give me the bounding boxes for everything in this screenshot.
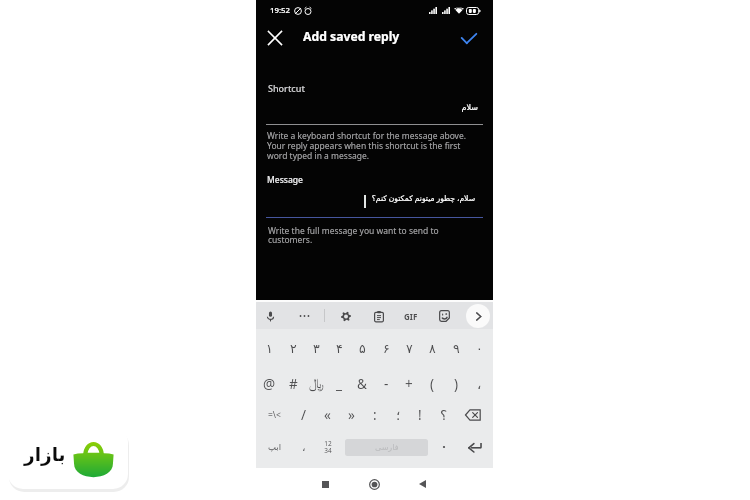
staticText: ؟ (440, 407, 448, 423)
button[interactable]: ! (409, 403, 431, 427)
button[interactable]: ﷼ (305, 372, 327, 396)
staticText: ۹ (453, 341, 460, 356)
staticText: ۸ (429, 341, 436, 356)
staticText: ( (430, 375, 435, 393)
button[interactable]: _ (328, 372, 350, 396)
staticText: سلام (256, 103, 478, 112)
button[interactable] (433, 434, 455, 460)
staticText: ، (477, 376, 482, 392)
button[interactable]: & (351, 372, 373, 396)
staticText: » (348, 406, 355, 424)
button[interactable]: ۱ (258, 336, 280, 360)
button[interactable]: ابپ (263, 434, 287, 460)
button[interactable]: ۸ (421, 336, 443, 360)
staticText: سلام، چطور میتونم کمکتون کنم؟ (256, 193, 475, 203)
button[interactable]: ) (445, 372, 467, 396)
button[interactable]: Voice input (259, 305, 281, 327)
button[interactable]: ۴ (328, 336, 350, 360)
staticText: ؛ (396, 407, 401, 423)
staticText: ۵ (359, 341, 366, 356)
staticText: Message (267, 174, 303, 186)
button[interactable]: » (340, 403, 362, 427)
staticText: ۴ (336, 341, 343, 356)
staticText: / (301, 406, 307, 424)
button[interactable]: / (293, 403, 315, 427)
staticText: - (384, 375, 389, 393)
staticText: Add saved reply (303, 28, 400, 45)
button[interactable]: Stickers (433, 305, 455, 327)
button[interactable]: ۶ (375, 336, 397, 360)
button[interactable]: - (375, 372, 397, 396)
button[interactable]: Backspace (460, 403, 486, 427)
staticText: 19:52 (270, 5, 290, 16)
button[interactable]: Home (362, 472, 386, 496)
button[interactable]: ؟ (433, 403, 455, 427)
button[interactable]: More options (293, 305, 315, 327)
staticText: ابپ (268, 442, 282, 452)
staticText: & (357, 375, 367, 393)
button[interactable]: + (398, 372, 420, 396)
button[interactable]: Save (454, 23, 484, 53)
button[interactable]: « (316, 403, 338, 427)
button[interactable]: ۵ (351, 336, 373, 360)
staticText: ۶ (383, 341, 390, 356)
button[interactable]: Bazaar (8, 427, 128, 489)
button[interactable]: Close (258, 21, 292, 55)
staticText: Write the full message you want to send … (268, 225, 439, 245)
staticText: ۰ (476, 341, 483, 356)
staticText: ۱ (266, 341, 273, 356)
staticText: ۷ (406, 341, 413, 356)
staticText: ۲ (290, 341, 297, 356)
button[interactable]: ۹ (445, 336, 467, 360)
button[interactable]: # (282, 372, 304, 396)
button[interactable]: @ (258, 372, 280, 396)
button[interactable]: Enter (462, 434, 487, 460)
button[interactable]: Expand toolbar (466, 304, 490, 328)
staticText: + (405, 375, 413, 393)
staticText: ﷼ (309, 377, 324, 391)
button[interactable]: فارسی (345, 439, 428, 456)
button[interactable]: GIF (399, 305, 423, 327)
staticText: _ (336, 375, 342, 393)
button[interactable]: 12 34 (317, 434, 338, 460)
staticText: @ (263, 375, 276, 393)
staticText: « (324, 406, 331, 424)
button[interactable]: Settings (335, 305, 357, 327)
staticText: بازار (24, 444, 66, 466)
button[interactable]: ۷ (398, 336, 420, 360)
button[interactable]: ، (468, 372, 490, 396)
button[interactable]: Back (410, 472, 434, 496)
staticText: ) (454, 375, 459, 393)
button[interactable]: ۲ (282, 336, 304, 360)
button[interactable]: ، (292, 434, 315, 460)
staticText: 12 34 (324, 439, 332, 455)
button[interactable]: Recents (313, 472, 337, 496)
staticText: : (373, 406, 377, 424)
staticText: GIF (404, 311, 418, 322)
staticText: # (289, 375, 298, 393)
button[interactable]: ( (421, 372, 443, 396)
staticText: Write a keyboard shortcut for the messag… (267, 130, 467, 161)
button[interactable]: ۳ (305, 336, 327, 360)
staticText: ! (418, 406, 422, 424)
button[interactable]: ؛ (387, 403, 409, 427)
staticText: ۳ (313, 341, 320, 356)
staticText: Shortcut (268, 82, 305, 94)
button[interactable]: : (364, 403, 386, 427)
button[interactable]: Clipboard (368, 305, 390, 327)
staticText: =\< (268, 409, 281, 421)
button[interactable]: =\< (262, 403, 286, 427)
button[interactable]: ۰ (468, 336, 490, 360)
staticText: فارسی (375, 443, 399, 452)
staticText: ، (302, 441, 306, 454)
